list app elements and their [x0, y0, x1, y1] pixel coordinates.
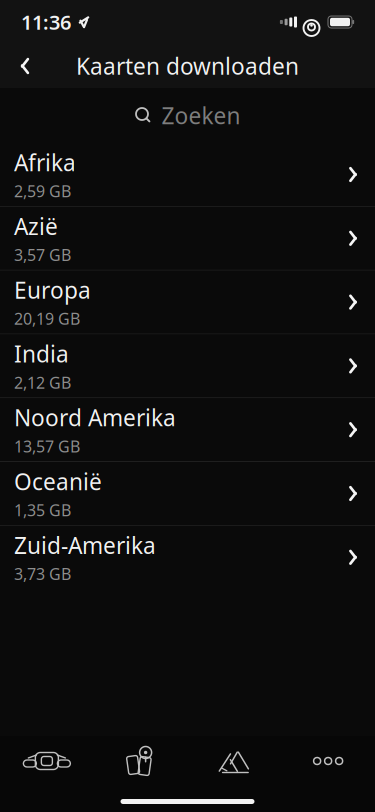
button[interactable]: Kaart — [94, 737, 188, 785]
staticText: 11:36 — [21, 9, 71, 35]
staticText: 20,19 GB — [14, 308, 80, 329]
button[interactable]: Terrein — [187, 737, 281, 785]
button[interactable]: Zoeken — [0, 88, 375, 143]
staticText: Kaarten downloaden — [76, 51, 299, 81]
button[interactable]: India — [0, 334, 375, 397]
staticText: 3,73 GB — [14, 563, 71, 584]
staticText: Europa — [14, 275, 91, 305]
staticText: Oceanië — [14, 466, 102, 496]
button[interactable]: Terug — [2, 44, 48, 88]
staticText: Azië — [14, 211, 58, 241]
button[interactable]: Azië — [0, 207, 375, 270]
staticText: India — [14, 339, 69, 369]
staticText: 2,12 GB — [14, 372, 71, 393]
staticText: 2,59 GB — [14, 180, 71, 202]
staticText: 13,57 GB — [14, 436, 80, 457]
staticText: Zuid-Amerika — [14, 530, 156, 560]
button[interactable]: Oceanië — [0, 462, 375, 525]
button[interactable]: Europa — [0, 271, 375, 334]
staticText: Afrika — [14, 147, 76, 177]
button[interactable]: Zuid-Amerika — [0, 526, 375, 589]
button[interactable]: Afrika — [0, 143, 375, 206]
staticText: 1,35 GB — [14, 499, 71, 521]
button[interactable]: Noord Amerika — [0, 398, 375, 461]
button[interactable]: Voertuig — [0, 737, 94, 785]
staticText: 3,57 GB — [14, 244, 71, 265]
button[interactable]: Meer — [281, 737, 375, 785]
staticText: Zoeken — [161, 100, 240, 130]
staticText: Noord Amerika — [14, 402, 176, 433]
